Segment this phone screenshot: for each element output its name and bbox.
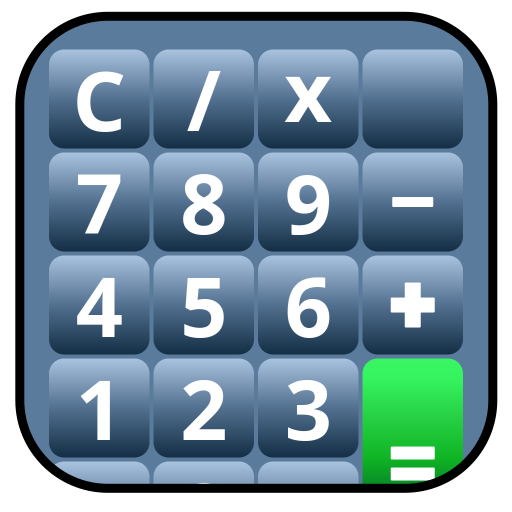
button[interactable]: / bbox=[153, 49, 254, 148]
button[interactable]: . bbox=[49, 461, 149, 512]
button[interactable]: Minus bbox=[362, 152, 463, 251]
staticText: 1 bbox=[76, 353, 123, 463]
button[interactable]: 0 bbox=[153, 461, 254, 512]
button[interactable] bbox=[362, 49, 463, 148]
staticText: 7 bbox=[76, 147, 123, 257]
staticText: C bbox=[73, 44, 126, 154]
staticText: 8 bbox=[180, 147, 227, 257]
button[interactable]: Plus bbox=[362, 255, 463, 354]
button[interactable]: C bbox=[49, 49, 149, 148]
button[interactable]: 7 bbox=[49, 152, 149, 251]
button[interactable]: 5 bbox=[153, 255, 254, 354]
button[interactable]: ± bbox=[258, 461, 358, 512]
staticText: 6 bbox=[285, 250, 332, 360]
button[interactable]: 6 bbox=[258, 255, 358, 354]
staticText: x bbox=[284, 35, 332, 145]
button[interactable]: 9 bbox=[258, 152, 358, 251]
button[interactable]: 8 bbox=[153, 152, 254, 251]
staticText: . bbox=[88, 456, 111, 512]
button[interactable]: Equals bbox=[362, 358, 463, 512]
button[interactable]: x bbox=[258, 49, 358, 148]
staticText: 2 bbox=[180, 353, 227, 463]
button[interactable]: 3 bbox=[258, 358, 358, 457]
staticText: ± bbox=[285, 456, 332, 512]
button[interactable]: 4 bbox=[49, 255, 149, 354]
button[interactable]: 2 bbox=[153, 358, 254, 457]
button[interactable]: 1 bbox=[49, 358, 149, 457]
staticText: 0 bbox=[180, 456, 227, 512]
staticText: 9 bbox=[285, 147, 332, 257]
staticText: 3 bbox=[285, 353, 332, 463]
staticText: 4 bbox=[76, 250, 123, 360]
staticText: / bbox=[187, 44, 221, 154]
staticText: 5 bbox=[180, 250, 227, 360]
